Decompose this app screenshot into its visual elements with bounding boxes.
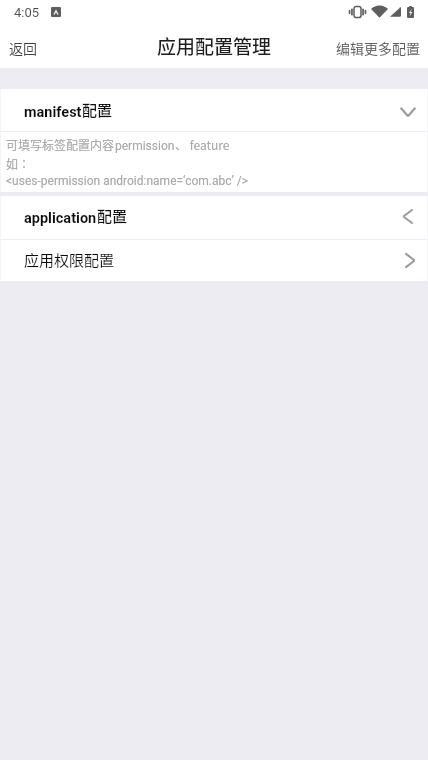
staticText: 应用权限配置: [24, 249, 115, 271]
staticText: application: [24, 210, 97, 227]
button[interactable]: 返回: [0, 30, 48, 66]
staticText: <uses-permission android:name=‘com.abc’ …: [6, 174, 249, 188]
staticText: 、 feature: [175, 136, 230, 153]
staticText: 可填写标签配置内容: [6, 136, 115, 153]
staticText: permission: [115, 139, 175, 153]
button[interactable]: Collapse manifest section: [386, 91, 428, 133]
staticText: 应用配置管理: [157, 32, 272, 60]
staticText: 配置: [82, 99, 113, 121]
staticText: 4:05: [14, 5, 40, 20]
staticText: manifest: [24, 104, 82, 121]
button[interactable]: Open permission settings: [388, 240, 428, 281]
button[interactable]: Expand application section: [386, 195, 428, 238]
button[interactable]: manifest: [0, 89, 428, 131]
button[interactable]: application: [0, 196, 428, 239]
staticText: 配置: [97, 205, 128, 227]
staticText: 如：: [6, 155, 31, 172]
button[interactable]: 应用权限配置: [0, 240, 428, 281]
button[interactable]: 编辑更多配置: [326, 30, 428, 66]
